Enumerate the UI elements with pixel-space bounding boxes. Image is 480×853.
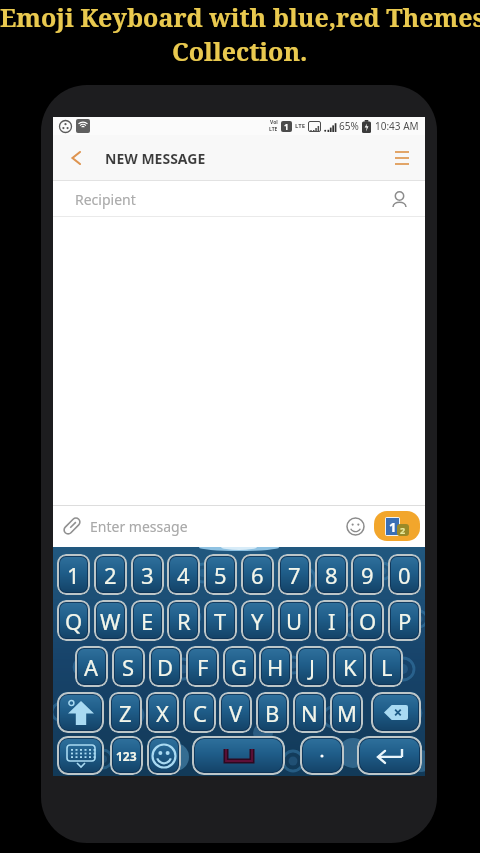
- button[interactable]: F: [186, 646, 219, 687]
- staticText: G: [231, 652, 248, 682]
- button[interactable]: 123: [110, 736, 143, 775]
- staticText: 2: [104, 560, 117, 590]
- staticText: Y: [251, 606, 264, 636]
- staticText: W: [100, 606, 121, 636]
- button[interactable]: Q: [57, 600, 90, 641]
- staticText: LTE: [269, 126, 278, 133]
- staticText: R: [177, 606, 191, 636]
- button[interactable]: X: [146, 692, 179, 733]
- button[interactable]: S: [112, 646, 145, 687]
- staticText: 123: [116, 748, 137, 764]
- staticText: Enter message: [90, 517, 188, 536]
- button[interactable]: 7: [278, 554, 311, 595]
- button[interactable]: N: [293, 692, 326, 733]
- button[interactable]: [63, 146, 87, 170]
- staticText: J: [309, 652, 316, 682]
- button[interactable]: [395, 151, 409, 165]
- staticText: 1: [67, 560, 80, 590]
- staticText: D: [157, 652, 174, 682]
- button[interactable]: 6: [241, 554, 274, 595]
- staticText: A: [84, 652, 99, 682]
- staticText: Vol: [270, 119, 278, 126]
- button[interactable]: O: [351, 600, 384, 641]
- button[interactable]: P: [388, 600, 421, 641]
- staticText: 8: [325, 560, 338, 590]
- button[interactable]: J: [296, 646, 329, 687]
- button[interactable]: [371, 692, 421, 733]
- button[interactable]: [57, 692, 104, 733]
- button[interactable]: [346, 517, 365, 536]
- staticText: Z: [119, 698, 132, 728]
- staticText: T: [214, 606, 227, 636]
- button[interactable]: H: [259, 646, 292, 687]
- staticText: 0: [398, 560, 411, 590]
- staticText: M: [337, 698, 357, 728]
- button[interactable]: [300, 736, 344, 775]
- button[interactable]: W: [94, 600, 127, 641]
- staticText: 9: [361, 560, 374, 590]
- staticText: X: [156, 698, 169, 728]
- staticText: Q: [65, 606, 83, 636]
- staticText: 5: [214, 560, 227, 590]
- button[interactable]: [57, 736, 104, 775]
- staticText: S: [122, 652, 135, 682]
- staticText: K: [343, 652, 357, 682]
- button[interactable]: C: [183, 692, 216, 733]
- button[interactable]: 2: [94, 554, 127, 595]
- staticText: 2: [400, 524, 406, 536]
- button[interactable]: D: [149, 646, 182, 687]
- button[interactable]: Z: [109, 692, 142, 733]
- staticText: N: [301, 698, 318, 728]
- button[interactable]: T: [204, 600, 237, 641]
- button[interactable]: [192, 736, 285, 775]
- staticText: E: [141, 606, 154, 636]
- staticText: F: [197, 652, 209, 682]
- staticText: 1: [284, 121, 289, 132]
- button[interactable]: B: [256, 692, 289, 733]
- staticText: 1: [389, 518, 397, 536]
- staticText: 3: [141, 560, 154, 590]
- staticText: L: [381, 652, 393, 682]
- staticText: 7: [288, 560, 301, 590]
- staticText: O: [359, 606, 377, 636]
- button[interactable]: 8: [315, 554, 348, 595]
- button[interactable]: A: [75, 646, 108, 687]
- button[interactable]: V: [219, 692, 252, 733]
- staticText: U: [286, 606, 303, 636]
- button[interactable]: Recipient: [53, 181, 425, 217]
- staticText: 10:43 AM: [375, 119, 419, 133]
- button[interactable]: [357, 736, 422, 775]
- button[interactable]: 9: [351, 554, 384, 595]
- staticText: LTE: [295, 122, 306, 130]
- button[interactable]: 0: [388, 554, 421, 595]
- staticText: I: [328, 606, 336, 636]
- button[interactable]: 4: [167, 554, 200, 595]
- staticText: H: [267, 652, 284, 682]
- staticText: NEW MESSAGE: [105, 149, 206, 168]
- button[interactable]: I: [315, 600, 348, 641]
- button[interactable]: [147, 736, 181, 775]
- staticText: Collection.: [172, 34, 308, 68]
- button[interactable]: U: [278, 600, 311, 641]
- staticText: C: [193, 698, 207, 728]
- button[interactable]: L: [370, 646, 403, 687]
- staticText: P: [398, 606, 412, 636]
- staticText: 4: [177, 560, 190, 590]
- button[interactable]: [62, 516, 82, 536]
- button[interactable]: E: [131, 600, 164, 641]
- staticText: Recipient: [75, 190, 136, 209]
- staticText: Emoji Keyboard with blue,red Themes: [0, 0, 480, 34]
- button[interactable]: Y: [241, 600, 274, 641]
- staticText: 6: [251, 560, 264, 590]
- button[interactable]: R: [167, 600, 200, 641]
- staticText: 65%: [339, 119, 359, 133]
- button[interactable]: 3: [131, 554, 164, 595]
- button[interactable]: 5: [204, 554, 237, 595]
- button[interactable]: 1: [57, 554, 90, 595]
- staticText: V: [229, 698, 243, 728]
- button[interactable]: K: [333, 646, 366, 687]
- button[interactable]: 1: [374, 511, 420, 541]
- button[interactable]: G: [223, 646, 256, 687]
- button[interactable]: M: [330, 692, 363, 733]
- staticText: B: [265, 698, 280, 728]
